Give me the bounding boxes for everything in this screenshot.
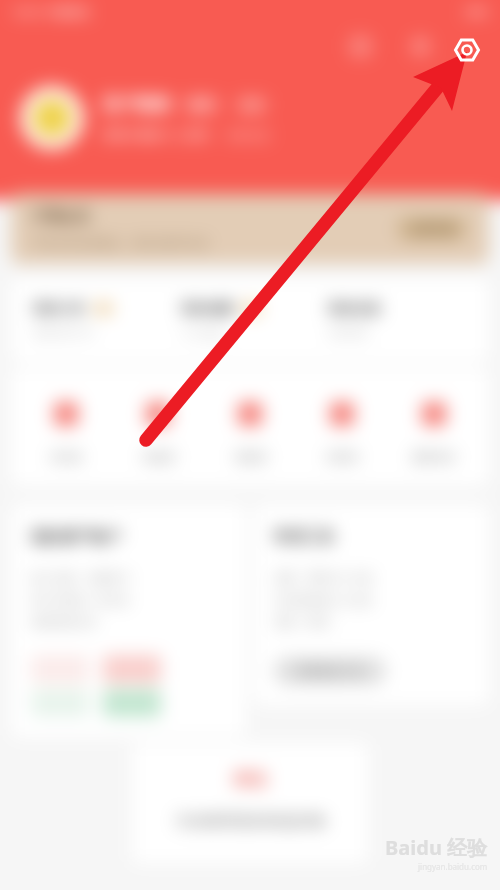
button[interactable]: Settings: [404, 30, 436, 62]
button[interactable]: 查看更多工具: [274, 657, 386, 685]
button[interactable]: 待发货: [121, 402, 195, 464]
button[interactable]: 我的订单: [33, 300, 181, 339]
staticText: 我的资产账户: [31, 528, 121, 547]
staticText: 为你推荐更多精选好物: [175, 812, 325, 831]
staticText: 精选: [233, 769, 267, 790]
button[interactable]: 待付款: [29, 402, 103, 464]
staticText: 12 件商品: [181, 326, 226, 340]
staticText: 用户昵称: [102, 94, 170, 115]
staticText: 我的收藏: [181, 300, 233, 316]
button[interactable]: 精选: [132, 743, 368, 863]
staticText: jingyan.baidu.com: [418, 861, 488, 872]
staticText: 会员: [191, 98, 211, 111]
staticText: 新: [247, 303, 256, 314]
button[interactable]: 待收货: [213, 402, 287, 464]
staticText: Baidu 经验: [385, 834, 488, 861]
staticText: 查看并编辑个人资料: [102, 127, 210, 142]
staticText: 我的足迹: [328, 300, 380, 316]
staticText: 常用工具: [274, 528, 334, 547]
button[interactable]: 立即开通: [410, 222, 454, 236]
button[interactable]: 退款售后: [397, 402, 471, 464]
button[interactable]: 待评价: [305, 402, 379, 464]
button[interactable]: 我的足迹: [328, 300, 475, 339]
staticText: 10:24 中国移动: [12, 4, 90, 19]
button[interactable]: Scan: [344, 30, 376, 62]
button[interactable]: 开通会员: [11, 194, 489, 264]
staticText: 我的订单: [33, 300, 85, 316]
staticText: 开通会员: [33, 208, 89, 226]
button[interactable]: 用户昵称: [20, 86, 484, 150]
staticText: 查看更多工具: [297, 664, 363, 678]
staticText: 立即开通: [410, 222, 454, 236]
button[interactable]: 我的收藏: [181, 300, 328, 340]
